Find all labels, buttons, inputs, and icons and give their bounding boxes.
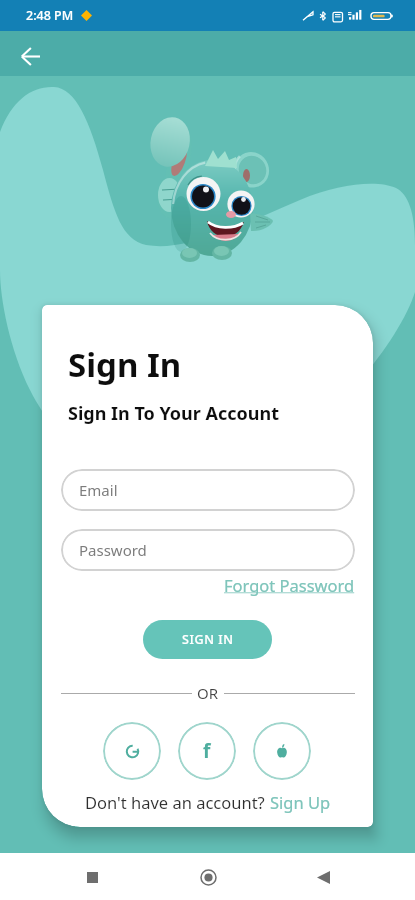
staticText: Sign In To Your Account bbox=[68, 401, 280, 426]
button[interactable]: Sign in with Apple bbox=[253, 722, 311, 780]
button[interactable]: Email bbox=[61, 469, 355, 511]
button[interactable]: Home bbox=[185, 854, 231, 900]
button[interactable]: SIGN IN bbox=[143, 620, 272, 659]
staticText: Email bbox=[79, 480, 118, 500]
button[interactable]: Sign in with Google bbox=[103, 722, 161, 780]
button[interactable]: Back bbox=[300, 854, 346, 900]
staticText: Password bbox=[79, 540, 147, 560]
staticText: SIGN IN bbox=[182, 631, 234, 648]
staticText: 2:48 PM bbox=[26, 7, 74, 24]
staticText: Don't have an account? bbox=[85, 791, 270, 813]
staticText: OR bbox=[197, 683, 219, 703]
staticText: f bbox=[203, 738, 211, 764]
button[interactable]: Sign in with Facebook bbox=[178, 722, 236, 780]
staticText: Sign In bbox=[68, 342, 182, 387]
button[interactable]: Sign Up bbox=[270, 791, 331, 813]
button[interactable]: Back bbox=[8, 34, 53, 79]
button[interactable]: Password bbox=[61, 529, 355, 571]
button[interactable]: Recents bbox=[69, 854, 115, 900]
button[interactable]: Forgot Password bbox=[224, 574, 355, 596]
